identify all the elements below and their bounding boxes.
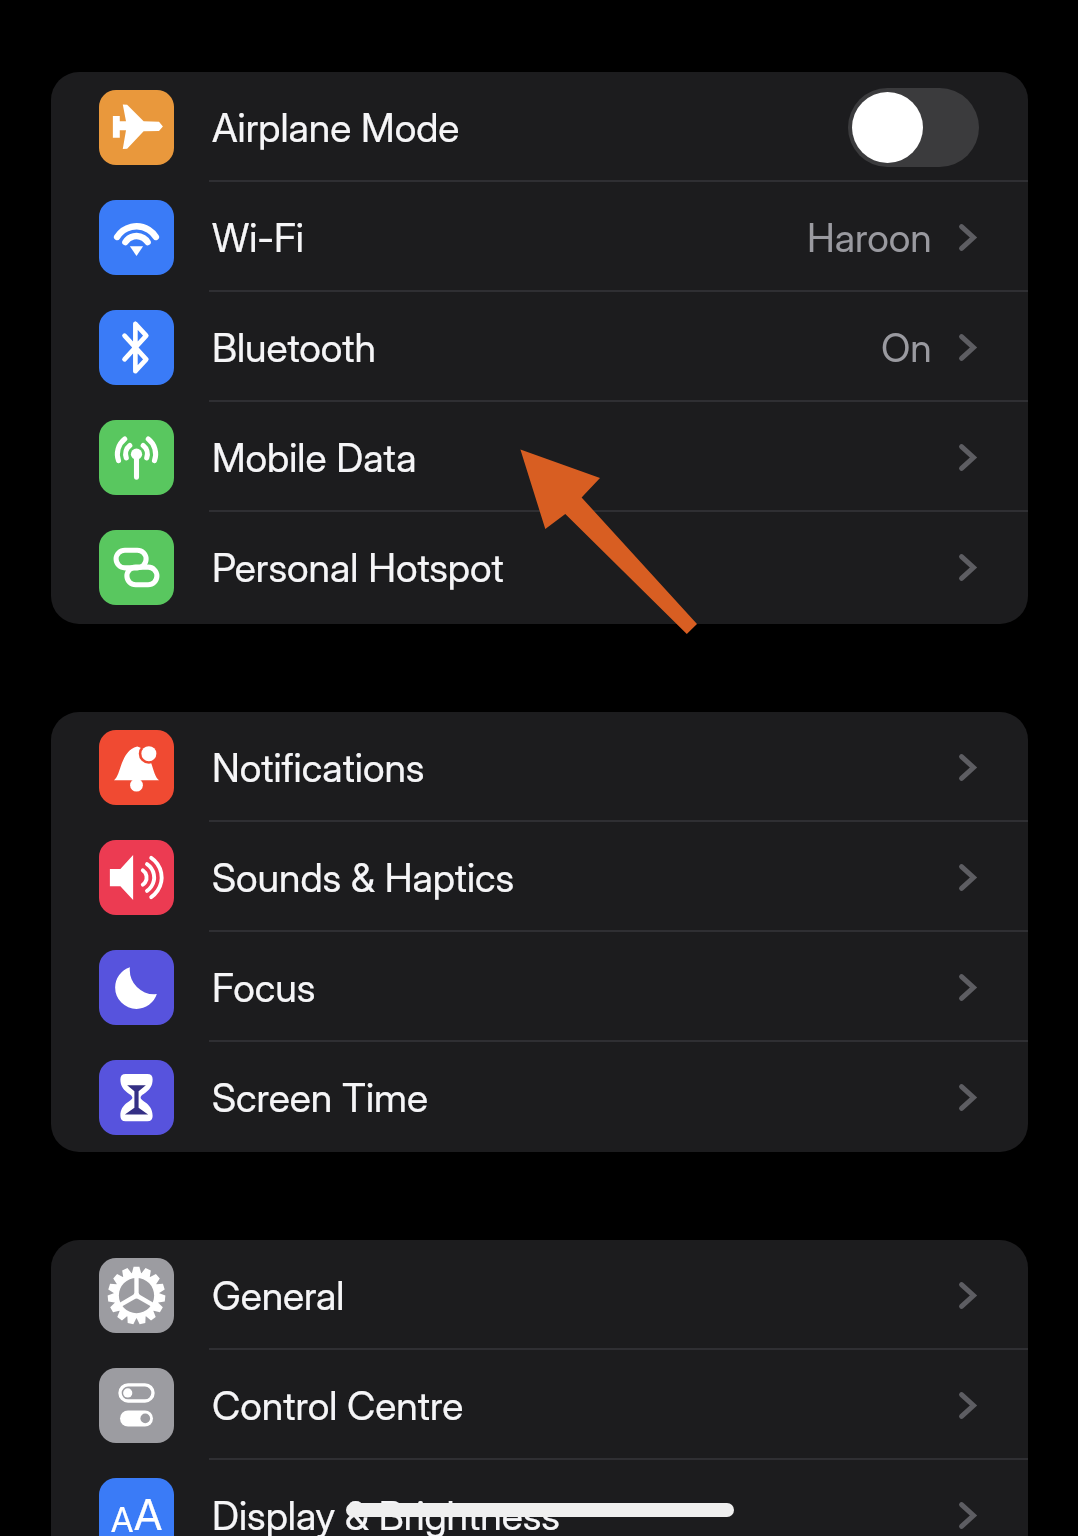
button[interactable]: Control Centre [51,1350,1028,1460]
button[interactable]: Notifications [51,712,1028,822]
other: Open [959,1502,976,1529]
button[interactable]: Wi-Fi [51,182,1028,292]
button[interactable]: Personal Hotspot [51,512,1028,622]
staticText: Screen Time [212,1074,428,1121]
other: Open [959,334,976,361]
button[interactable]: Airplane Mode toggle [848,88,979,167]
staticText: Mobile Data [212,434,417,481]
other: Open [959,224,976,251]
button[interactable]: Focus [51,932,1028,1042]
staticText: Control Centre [212,1382,464,1429]
other: Open [959,444,976,471]
staticText: Notifications [212,744,425,791]
button[interactable]: Airplane Mode [51,72,1028,182]
staticText: Airplane Mode [212,104,460,151]
other: Open [959,1392,976,1419]
other: Open [959,1084,976,1111]
staticText: On [881,324,932,371]
button[interactable]: Bluetooth [51,292,1028,402]
staticText: Display & Brightness [212,1492,560,1536]
staticText: Personal Hotspot [212,544,504,591]
staticText: Sounds & Haptics [212,854,515,901]
other: Open [959,974,976,1001]
button[interactable]: Sounds & Haptics [51,822,1028,932]
other: Open [959,554,976,581]
other: Open [959,754,976,781]
button[interactable]: General [51,1240,1028,1350]
staticText: Focus [212,964,316,1011]
button[interactable]: Mobile Data [51,402,1028,512]
other: Open [959,1282,976,1309]
staticText: Haroon [807,214,932,261]
staticText: Wi-Fi [212,214,304,261]
staticText: A [134,1488,163,1536]
staticText: Bluetooth [212,324,376,371]
staticText: General [212,1272,345,1319]
staticText: A [111,1499,134,1536]
other: Open [959,864,976,891]
button[interactable]: Screen Time [51,1042,1028,1152]
button[interactable]: A [51,1460,1028,1536]
